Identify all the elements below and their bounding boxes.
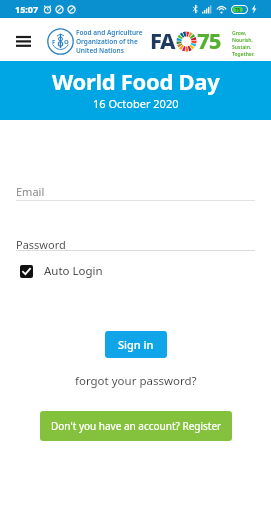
staticText: forgot your password? xyxy=(75,373,197,389)
staticText: Grow, xyxy=(232,30,247,37)
staticText: F xyxy=(52,38,56,46)
staticText: O xyxy=(64,38,69,46)
button[interactable] xyxy=(16,228,255,252)
staticText: Email xyxy=(16,184,45,199)
staticText: FA xyxy=(150,25,175,55)
staticText: Together. xyxy=(232,51,255,58)
staticText: Don't you have an account? Register xyxy=(51,419,222,433)
staticText: 16 October 2020 xyxy=(93,96,179,111)
staticText: 75 xyxy=(197,25,221,55)
staticText: Sign in xyxy=(118,337,154,352)
staticText: United Nations xyxy=(76,46,124,55)
staticText: Organization of the xyxy=(76,37,138,46)
button[interactable] xyxy=(0,18,44,61)
staticText: World Food Day xyxy=(52,66,220,96)
staticText: Auto Login xyxy=(44,263,103,279)
button[interactable] xyxy=(16,178,255,202)
staticText: 75 xyxy=(235,7,241,13)
button[interactable]: Sign in xyxy=(105,331,167,358)
button[interactable]: forgot your password? xyxy=(71,369,201,393)
button[interactable]: Auto Login xyxy=(20,263,103,279)
staticText: Password xyxy=(16,237,66,252)
staticText: 15:07 xyxy=(15,3,39,15)
staticText: Nourish, xyxy=(232,37,253,44)
button[interactable]: Don't you have an account? Register xyxy=(40,411,232,441)
staticText: Food and Agriculture xyxy=(76,28,143,37)
staticText: Sustain. xyxy=(232,44,252,51)
